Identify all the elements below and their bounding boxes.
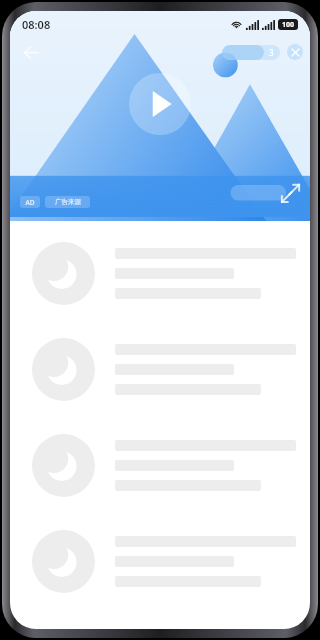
staticText: 3 — [269, 47, 274, 58]
staticText: AD — [25, 198, 35, 207]
button[interactable] — [10, 321, 310, 417]
button[interactable] — [10, 513, 310, 609]
button[interactable]: 广告来源 — [45, 196, 90, 208]
button[interactable]: Back — [16, 37, 46, 67]
button[interactable]: Close ad — [287, 44, 303, 60]
staticText: 100 — [282, 20, 295, 30]
button[interactable]: AD — [20, 196, 40, 208]
button[interactable]: 3 — [222, 45, 280, 60]
button[interactable]: Play — [129, 73, 191, 135]
staticText: 广告来源 — [55, 198, 81, 206]
button[interactable] — [10, 417, 310, 513]
staticText: 08:08 — [22, 17, 51, 32]
button[interactable] — [10, 225, 310, 321]
